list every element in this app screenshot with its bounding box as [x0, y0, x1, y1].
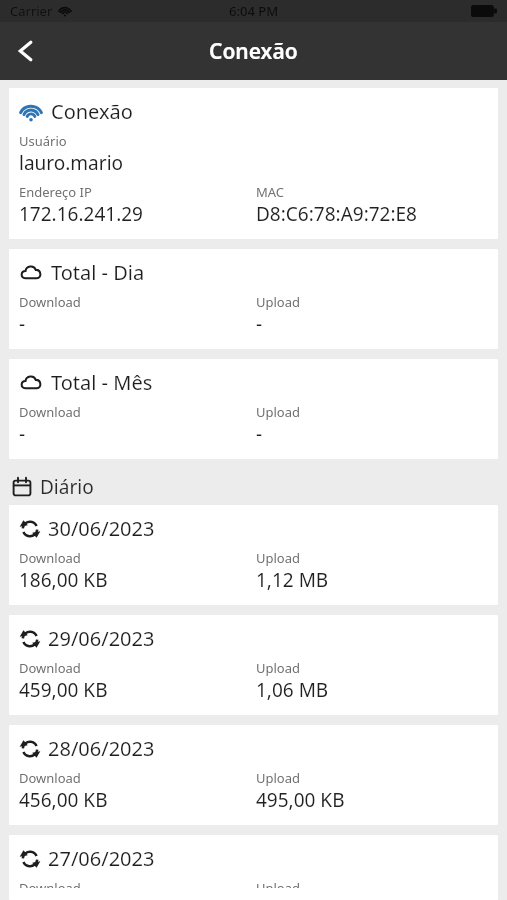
staticText: 495,00 KB: [256, 787, 345, 813]
button[interactable]: Total - Dia: [9, 249, 498, 349]
button[interactable]: 29/06/2023: [9, 615, 498, 715]
button[interactable]: Total - Mês: [9, 359, 498, 459]
staticText: 6:04 PM: [229, 2, 279, 20]
staticText: 28/06/2023: [48, 735, 155, 762]
staticText: Upload: [256, 879, 301, 888]
staticText: -: [256, 421, 263, 447]
button[interactable]: 27/06/2023: [9, 835, 498, 900]
staticText: -: [19, 311, 26, 337]
staticText: Upload: [256, 293, 301, 311]
staticText: Download: [19, 403, 81, 421]
staticText: Conexão: [51, 98, 133, 125]
staticText: Usuário: [19, 132, 67, 150]
staticText: Total - Dia: [51, 259, 145, 286]
button[interactable]: Back: [0, 25, 52, 77]
staticText: 459,00 KB: [19, 677, 108, 703]
staticText: Download: [19, 293, 81, 311]
button[interactable]: Conexão: [9, 88, 498, 239]
staticText: Conexão: [209, 37, 298, 66]
staticText: 27/06/2023: [48, 845, 155, 872]
staticText: Diário: [40, 474, 94, 500]
staticText: MAC: [256, 183, 285, 201]
staticText: Upload: [256, 769, 301, 787]
staticText: Total - Mês: [51, 369, 153, 396]
staticText: Download: [19, 659, 81, 677]
staticText: 1,12 MB: [256, 567, 329, 593]
staticText: 1,06 MB: [256, 677, 329, 703]
staticText: lauro.mario: [19, 150, 124, 176]
staticText: Upload: [256, 403, 301, 421]
staticText: 456,00 KB: [19, 787, 108, 813]
staticText: -: [256, 311, 263, 337]
staticText: Upload: [256, 549, 301, 567]
staticText: 172.16.241.29: [19, 201, 143, 227]
staticText: Download: [19, 879, 81, 888]
button[interactable]: Diário: [0, 469, 507, 505]
button[interactable]: 28/06/2023: [9, 725, 498, 825]
staticText: Upload: [256, 659, 301, 677]
staticText: D8:C6:78:A9:72:E8: [256, 201, 417, 227]
staticText: Download: [19, 549, 81, 567]
staticText: -: [19, 421, 26, 447]
staticText: Download: [19, 769, 81, 787]
staticText: 29/06/2023: [48, 625, 155, 652]
button[interactable]: 30/06/2023: [9, 505, 498, 605]
staticText: 30/06/2023: [48, 515, 155, 542]
staticText: Carrier: [10, 2, 53, 20]
staticText: Endereço IP: [19, 183, 92, 201]
staticText: 186,00 KB: [19, 567, 108, 593]
